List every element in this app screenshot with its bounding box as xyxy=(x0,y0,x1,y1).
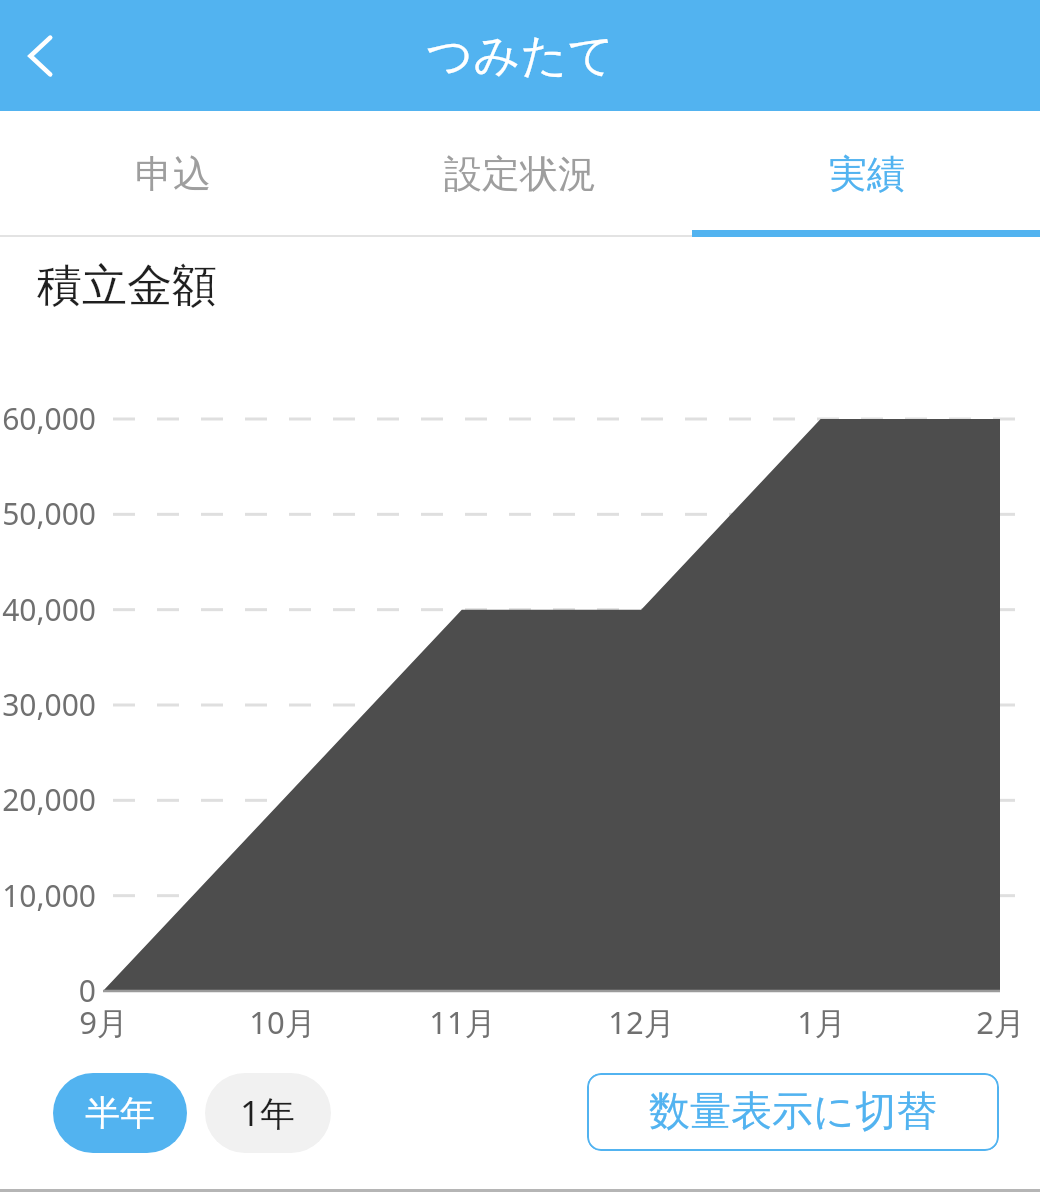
staticText: 積立金額 xyxy=(37,258,217,315)
staticText: 0 xyxy=(78,970,96,1011)
staticText: 実績 xyxy=(829,150,905,198)
button[interactable]: 数量表示に切替 xyxy=(587,1073,999,1151)
button[interactable]: 設定状況 xyxy=(346,111,693,237)
staticText: 数量表示に切替 xyxy=(649,1086,937,1138)
button[interactable]: 半年 xyxy=(53,1073,187,1153)
staticText: 30,000 xyxy=(2,684,96,725)
staticText: 1月 xyxy=(797,1001,846,1043)
staticText: 9月 xyxy=(79,1001,128,1043)
staticText: 2月 xyxy=(976,1001,1025,1043)
button[interactable]: 申込 xyxy=(0,111,346,237)
staticText: つみたて xyxy=(426,27,615,85)
staticText: 申込 xyxy=(135,150,211,198)
staticText: 10,000 xyxy=(2,875,96,916)
staticText: 40,000 xyxy=(2,589,96,630)
staticText: 60,000 xyxy=(2,398,96,439)
staticText: 設定状況 xyxy=(444,150,596,198)
button[interactable]: 実績 xyxy=(693,111,1040,237)
staticText: 50,000 xyxy=(2,493,96,534)
staticText: 11月 xyxy=(429,1001,496,1043)
staticText: 10月 xyxy=(249,1001,316,1043)
button[interactable]: 1年 xyxy=(205,1073,331,1153)
staticText: 半年 xyxy=(85,1091,155,1135)
staticText: 20,000 xyxy=(2,779,96,820)
staticText: 12月 xyxy=(608,1001,675,1043)
button[interactable]: Back xyxy=(2,17,80,95)
staticText: 1年 xyxy=(240,1089,296,1137)
